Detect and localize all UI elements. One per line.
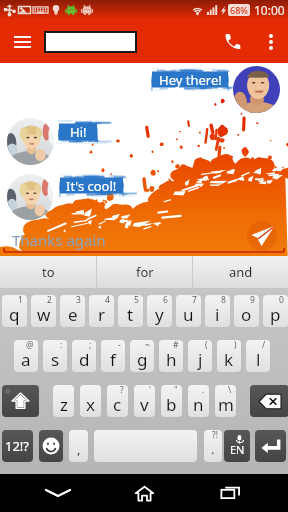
- staticText: p: [270, 303, 281, 326]
- staticText: Hey there!: [159, 71, 222, 89]
- button[interactable]: Navigation menu: [0, 20, 44, 63]
- staticText: m: [218, 393, 234, 416]
- staticText: -: [118, 340, 121, 351]
- button[interactable]: 9: [234, 295, 259, 327]
- staticText: /: [262, 340, 266, 351]
- button[interactable]: Emoji: [39, 430, 63, 462]
- staticText: 7: [192, 295, 197, 306]
- staticText: b: [166, 393, 177, 416]
- staticText: [143, 438, 148, 461]
- staticText: ': [149, 385, 151, 396]
- button[interactable]: ,: [69, 430, 88, 462]
- button[interactable]: More options: [254, 20, 288, 63]
- button[interactable]: Call: [210, 20, 254, 63]
- button[interactable]: 1: [2, 295, 27, 327]
- button[interactable]: \: [215, 385, 236, 417]
- button[interactable]: 8: [205, 295, 230, 327]
- button[interactable]: Contact photo: [233, 66, 280, 113]
- staticText: @: [26, 340, 34, 351]
- staticText: e: [68, 303, 78, 326]
- button[interactable]: #: [159, 340, 183, 372]
- button[interactable]: x: [80, 385, 101, 417]
- staticText: a: [21, 348, 31, 371]
- staticText: j: [198, 348, 203, 371]
- button[interactable]: ": [161, 385, 182, 417]
- button[interactable]: It's cool!: [59, 174, 124, 197]
- button[interactable]: Back: [30, 474, 86, 512]
- staticText: (: [205, 340, 208, 351]
- button[interactable]: ~: [130, 340, 154, 372]
- button[interactable]: 3: [60, 295, 85, 327]
- staticText: ?: [120, 385, 124, 396]
- button[interactable]: Message input: [0, 226, 288, 256]
- staticText: v: [140, 393, 149, 416]
- button[interactable]: Enter: [255, 430, 286, 462]
- staticText: y: [155, 303, 164, 326]
- staticText: ": [174, 385, 178, 396]
- staticText: Hi!: [70, 123, 87, 141]
- staticText: Thanks again: [12, 230, 106, 250]
- button[interactable]: Send message: [247, 221, 277, 251]
- button[interactable]: for: [97, 256, 192, 288]
- button[interactable]: Change language: [224, 430, 250, 462]
- button[interactable]: ;: [72, 340, 96, 372]
- button[interactable]: /: [246, 340, 270, 372]
- button[interactable]: Contact photo: [7, 118, 54, 165]
- button[interactable]: :: [43, 340, 67, 372]
- button[interactable]: @: [14, 340, 38, 372]
- staticText: f: [110, 348, 116, 371]
- staticText: It's cool!: [66, 177, 117, 195]
- button[interactable]: Contact photo: [7, 174, 53, 220]
- staticText: n: [193, 393, 204, 416]
- button[interactable]: -: [101, 340, 125, 372]
- staticText: l: [256, 348, 261, 371]
- staticText: u: [183, 303, 194, 326]
- button[interactable]: Shift: [2, 385, 39, 417]
- staticText: t: [127, 303, 134, 326]
- staticText: x: [86, 393, 95, 416]
- button[interactable]: 0: [263, 295, 288, 327]
- staticText: w: [37, 303, 51, 326]
- button[interactable]: Recent apps: [202, 474, 258, 512]
- button[interactable]: to: [0, 256, 96, 288]
- button[interactable]: .: [188, 385, 209, 417]
- staticText: 2: [47, 295, 52, 306]
- staticText: ?!: [212, 430, 218, 441]
- button[interactable]: 4: [89, 295, 114, 327]
- button[interactable]: ': [134, 385, 155, 417]
- staticText: ~: [145, 340, 150, 351]
- staticText: 0: [279, 295, 284, 306]
- button[interactable]: Hey there!: [151, 68, 229, 91]
- button[interactable]: 2: [31, 295, 56, 327]
- staticText: and: [229, 263, 253, 281]
- button[interactable]: ?: [107, 385, 128, 417]
- button[interactable]: (: [188, 340, 212, 372]
- staticText: 9: [250, 295, 255, 306]
- button[interactable]: Backspace: [250, 385, 288, 417]
- button[interactable]: z: [53, 385, 74, 417]
- button[interactable]: [94, 430, 197, 462]
- staticText: .: [202, 385, 205, 396]
- staticText: k: [224, 348, 234, 371]
- staticText: q: [9, 303, 20, 326]
- button[interactable]: ?!: [204, 430, 222, 462]
- button[interactable]: Home: [116, 474, 172, 512]
- staticText: o: [241, 303, 252, 326]
- staticText: 3: [76, 295, 81, 306]
- button[interactable]: Symbols: [2, 430, 33, 462]
- staticText: :: [60, 340, 63, 351]
- button[interactable]: 6: [147, 295, 172, 327]
- button[interactable]: Hi!: [58, 120, 98, 144]
- button[interactable]: 5: [118, 295, 143, 327]
- staticText: to: [42, 263, 55, 281]
- staticText: d: [79, 348, 90, 371]
- button[interactable]: ): [217, 340, 241, 372]
- staticText: ;: [89, 340, 92, 351]
- staticText: for: [136, 263, 154, 281]
- staticText: z: [60, 393, 68, 416]
- staticText: #: [173, 340, 179, 351]
- button[interactable]: 7: [176, 295, 201, 327]
- button[interactable]: and: [193, 256, 288, 288]
- staticText: 6: [163, 295, 168, 306]
